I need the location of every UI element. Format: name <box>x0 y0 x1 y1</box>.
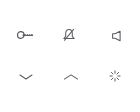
button[interactable]: Expand more <box>11 62 41 92</box>
button[interactable]: Notifications off <box>54 20 84 50</box>
button[interactable]: Lock <box>10 20 40 50</box>
button[interactable]: Expand less <box>56 62 86 92</box>
button[interactable]: Brightness <box>100 61 130 91</box>
button[interactable]: Volume <box>101 21 131 51</box>
